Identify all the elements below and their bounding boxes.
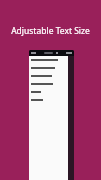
button[interactable]: [29, 80, 68, 88]
button[interactable]: [29, 56, 68, 64]
staticText: Adjustable Text Size: [0, 25, 101, 37]
button[interactable]: [29, 96, 68, 104]
button[interactable]: [29, 88, 68, 96]
button[interactable]: [29, 72, 68, 80]
button[interactable]: [29, 64, 68, 72]
button[interactable]: Phone preview: [29, 50, 74, 180]
